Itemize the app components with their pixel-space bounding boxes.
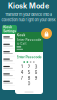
staticText: 8 <box>27 75 30 81</box>
staticText: Kiosk <box>17 33 26 37</box>
staticText: Transform your device into a <box>5 12 52 17</box>
staticText: Enter Passcode <box>16 55 41 59</box>
staticText: collection hub right on your desk <box>1 18 55 22</box>
staticText: Enter Passcode to Exit <box>17 38 42 45</box>
staticText: 3 <box>34 64 37 70</box>
staticText: 2 <box>27 64 30 70</box>
staticText: 9 <box>34 75 37 81</box>
staticText: 0 <box>27 81 30 86</box>
staticText: Kiosk Settings <box>3 25 16 33</box>
staticText: 5 <box>27 70 30 75</box>
staticText: 1 <box>21 64 23 70</box>
staticText: 6 <box>34 70 37 75</box>
staticText: Kiosk Mode <box>8 2 49 10</box>
staticText: 7 <box>20 75 23 81</box>
staticText: 4 <box>20 70 23 75</box>
